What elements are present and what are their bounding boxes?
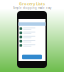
staticText: Grocery Lists [19,1,45,6]
button[interactable] [19,27,44,30]
button[interactable] [19,31,44,34]
button[interactable] [19,36,44,38]
staticText: Simple shopping made easy [13,6,51,10]
button[interactable] [22,55,42,59]
button[interactable] [19,44,44,47]
button[interactable] [19,40,44,42]
